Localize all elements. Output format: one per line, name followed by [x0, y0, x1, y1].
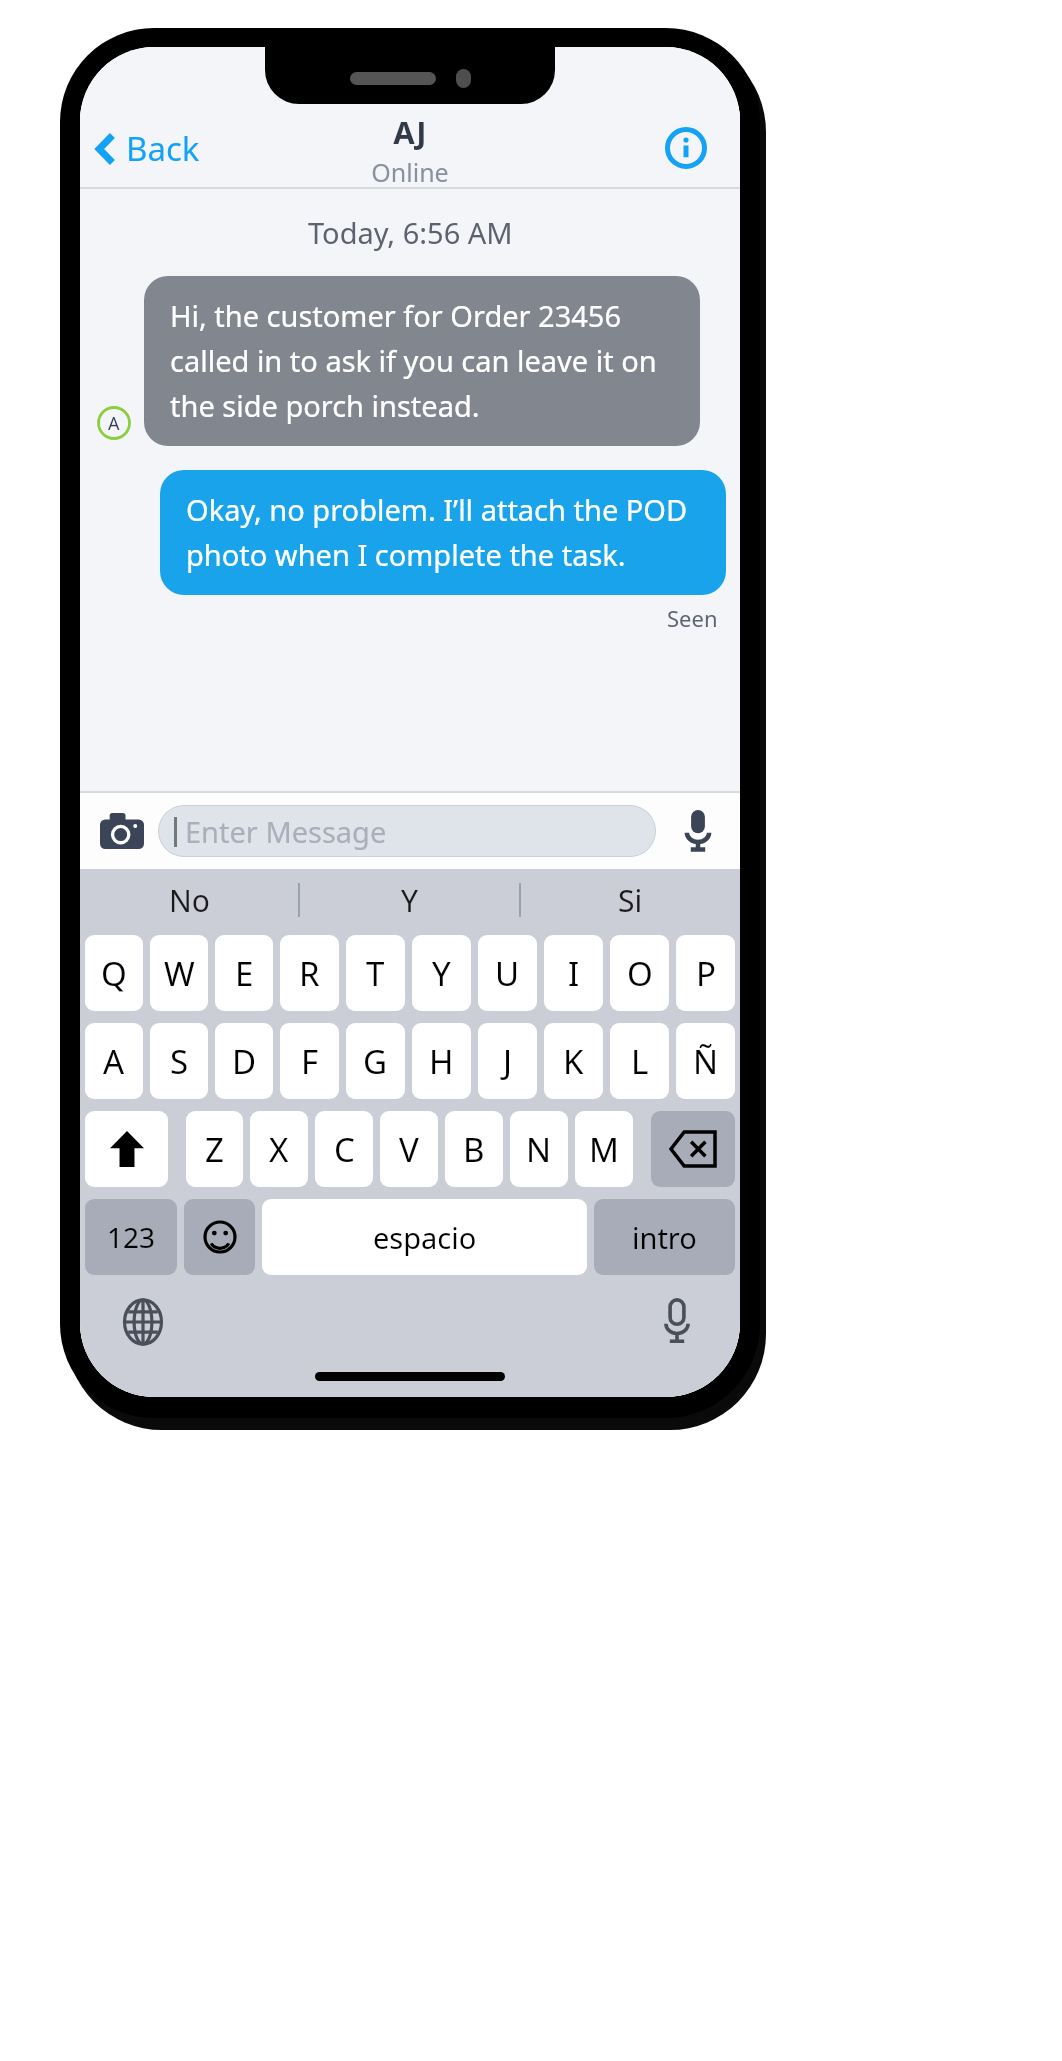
button[interactable]: Info	[660, 122, 712, 174]
button[interactable]: Back	[90, 120, 206, 177]
button[interactable]: Change keyboard language	[114, 1293, 172, 1351]
staticText: AJ	[393, 111, 427, 153]
staticText: C	[334, 1127, 355, 1172]
staticText: L	[631, 1039, 649, 1084]
staticText: Ñ	[693, 1039, 719, 1084]
staticText: R	[299, 951, 320, 996]
staticText: Seen	[667, 603, 718, 633]
staticText: Z	[205, 1127, 224, 1172]
staticText: B	[463, 1127, 485, 1172]
staticText: M	[589, 1127, 619, 1172]
button[interactable]: N	[510, 1111, 568, 1187]
button[interactable]: V	[380, 1111, 438, 1187]
staticText: S	[170, 1039, 189, 1084]
staticText: T	[366, 951, 385, 996]
button[interactable]: Q	[85, 935, 143, 1011]
staticText: P	[696, 951, 716, 996]
staticText: V	[399, 1127, 419, 1172]
button[interactable]: Ñ	[676, 1023, 735, 1099]
staticText: Si	[618, 880, 643, 921]
button[interactable]: W	[150, 935, 208, 1011]
button[interactable]: X	[250, 1111, 308, 1187]
staticText: H	[429, 1039, 454, 1084]
staticText: F	[301, 1039, 319, 1084]
button[interactable]: Voice message	[670, 803, 726, 859]
button[interactable]: Shift	[85, 1111, 168, 1187]
button[interactable]: Backspace	[651, 1111, 735, 1187]
button[interactable]: Camera	[94, 803, 150, 859]
staticText: Enter Message	[185, 812, 387, 851]
staticText: Online	[371, 155, 449, 189]
button[interactable]: K	[544, 1023, 603, 1099]
button[interactable]: I	[544, 935, 603, 1011]
staticText: N	[526, 1127, 552, 1172]
button[interactable]: S	[150, 1023, 208, 1099]
button[interactable]: R	[280, 935, 339, 1011]
button[interactable]: G	[346, 1023, 405, 1099]
staticText: Y	[401, 880, 418, 921]
button[interactable]: J	[478, 1023, 537, 1099]
button[interactable]: A	[85, 1023, 143, 1099]
staticText: O	[627, 951, 653, 996]
button[interactable]: E	[215, 935, 273, 1011]
staticText: Hi, the customer for Order 23456 called …	[170, 296, 674, 426]
staticText: E	[235, 951, 254, 996]
button[interactable]: intro	[594, 1199, 735, 1275]
staticText: espacio	[373, 1218, 477, 1257]
button[interactable]: L	[610, 1023, 669, 1099]
staticText: Okay, no problem. I’ll attach the POD ph…	[186, 490, 700, 575]
staticText: D	[232, 1039, 257, 1084]
button[interactable]: O	[610, 935, 669, 1011]
button[interactable]: 123	[85, 1199, 177, 1275]
button[interactable]: M	[575, 1111, 633, 1187]
button[interactable]: Z	[186, 1111, 243, 1187]
staticText: G	[363, 1039, 388, 1084]
button[interactable]: Okay, no problem. I’ll attach the POD ph…	[160, 470, 726, 595]
button[interactable]: Emoji	[184, 1199, 255, 1275]
button[interactable]: Y	[300, 869, 519, 931]
button[interactable]: D	[215, 1023, 273, 1099]
staticText: A	[103, 1039, 125, 1084]
staticText: K	[563, 1039, 584, 1084]
staticText: Q	[101, 951, 127, 996]
staticText: X	[269, 1127, 289, 1172]
button[interactable]: C	[315, 1111, 373, 1187]
button[interactable]: espacio	[262, 1199, 587, 1275]
button[interactable]: Dictation	[648, 1293, 706, 1351]
staticText: No	[169, 880, 210, 921]
staticText: intro	[632, 1218, 697, 1257]
staticText: J	[503, 1039, 513, 1084]
button[interactable]: T	[346, 935, 405, 1011]
button[interactable]: U	[478, 935, 537, 1011]
staticText: W	[164, 951, 195, 996]
button[interactable]: No	[80, 869, 298, 931]
button[interactable]: Enter Message	[158, 805, 656, 857]
button[interactable]: F	[280, 1023, 339, 1099]
button[interactable]: P	[676, 935, 735, 1011]
staticText: Back	[126, 126, 200, 171]
staticText: A	[108, 411, 120, 436]
staticText: U	[495, 951, 520, 996]
staticText: Y	[432, 951, 451, 996]
button[interactable]: Si	[521, 869, 740, 931]
staticText: I	[568, 951, 580, 996]
button[interactable]: Hi, the customer for Order 23456 called …	[144, 276, 700, 446]
button[interactable]: H	[412, 1023, 471, 1099]
staticText: 123	[107, 1218, 156, 1256]
staticText: Today, 6:56 AM	[308, 213, 513, 252]
button[interactable]: Y	[412, 935, 471, 1011]
button[interactable]: B	[445, 1111, 503, 1187]
